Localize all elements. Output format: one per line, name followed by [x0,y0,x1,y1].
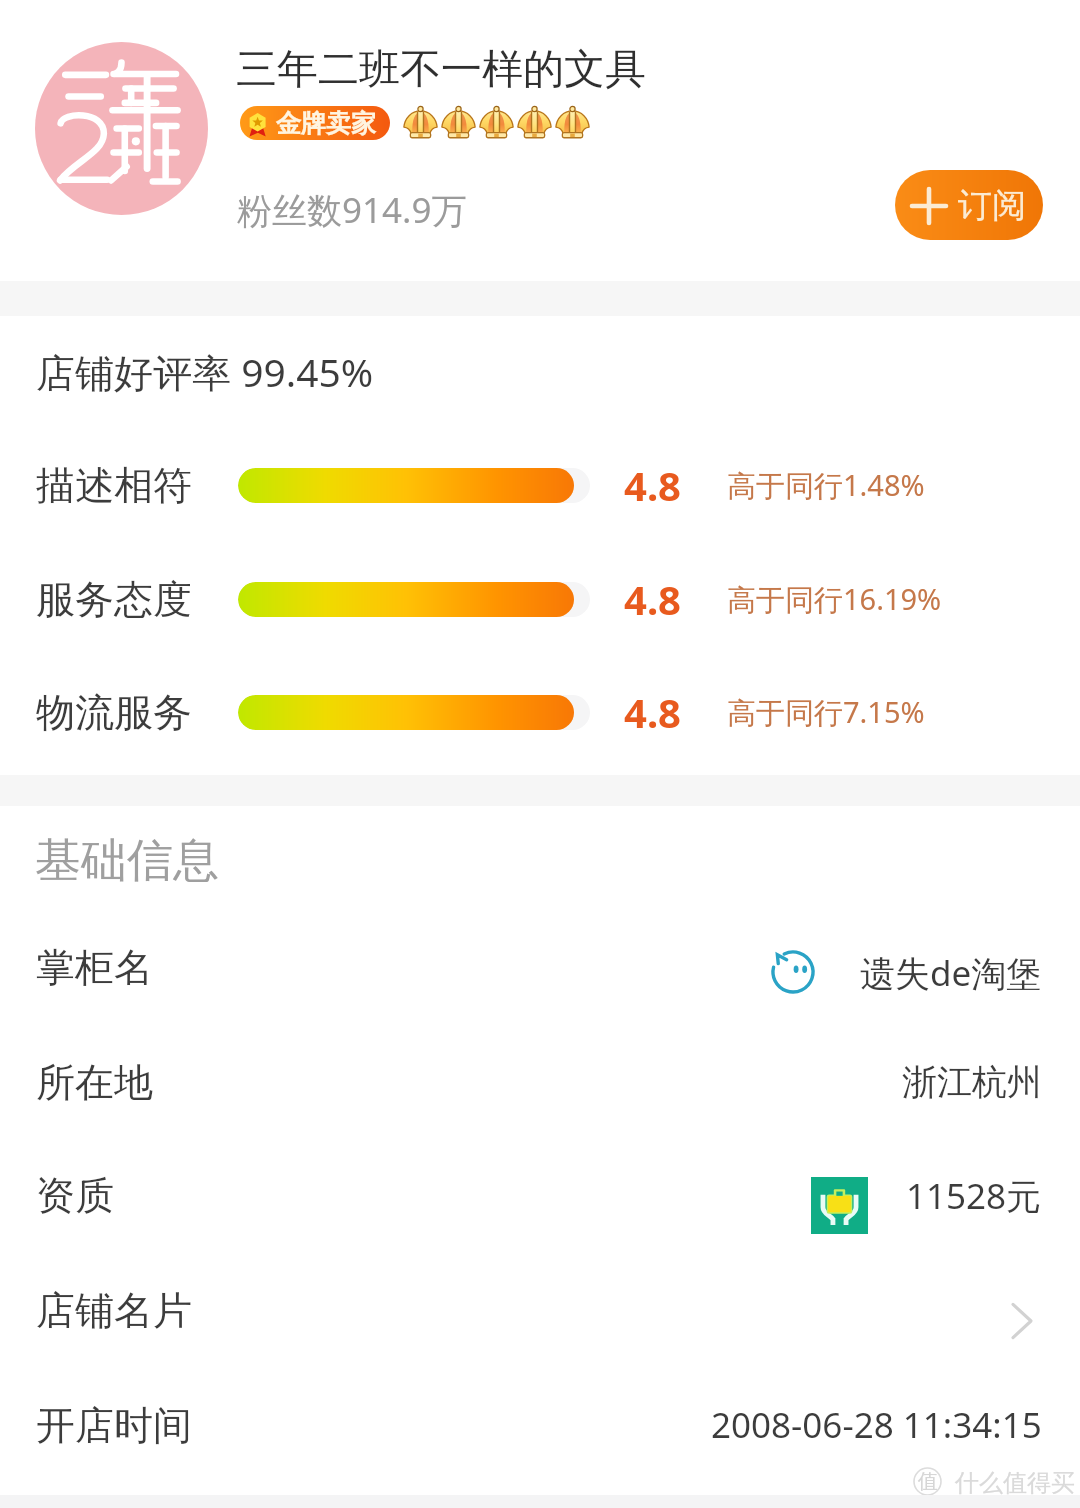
staticText: 物流服务 [36,688,192,737]
button[interactable]: 掌柜名 [0,932,1080,1002]
staticText: 掌柜名 [36,943,153,992]
button[interactable]: 所在地 [0,1047,1080,1117]
staticText: 订阅 [958,184,1026,227]
other: Open shop card [1002,1301,1042,1341]
staticText: 11528元 [906,1172,1042,1220]
staticText: 金牌卖家 [276,108,376,139]
staticText: 遗失de淘堡 [860,949,1042,997]
staticText: 高于同行16.19% [727,579,942,619]
staticText: 服务态度 [36,575,192,624]
staticText: 粉丝数914.9万 [237,186,467,234]
staticText: 店铺好评率 99.45% [36,345,374,395]
staticText: 什么值得买 [955,1468,1075,1498]
staticText: 三年二班不一样的文具 [236,44,646,96]
button[interactable]: 金牌卖家 [240,106,390,140]
button[interactable]: Shop avatar [35,42,208,215]
button[interactable]: 开店时间 [0,1390,1080,1460]
button[interactable]: 订阅 [895,170,1043,240]
staticText: 开店时间 [36,1401,192,1450]
staticText: 描述相符 [36,461,192,510]
staticText: 4.8 [624,572,681,626]
staticText: 高于同行7.15% [727,692,925,732]
staticText: 4.8 [624,685,681,739]
staticText: 资质 [36,1171,114,1220]
staticText: 基础信息 [35,832,219,890]
staticText: 所在地 [36,1058,153,1107]
staticText: 值 [918,1469,938,1494]
staticText: 浙江杭州 [902,1060,1042,1104]
button[interactable]: 资质 [0,1160,1080,1230]
staticText: 店铺名片 [36,1286,192,1335]
button[interactable]: 店铺名片 [0,1275,1080,1345]
staticText: 2008-06-28 11:34:15 [711,1401,1042,1449]
staticText: 高于同行1.48% [727,465,925,505]
staticText: 4.8 [624,458,681,512]
